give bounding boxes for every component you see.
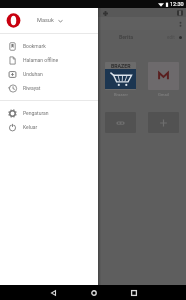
button[interactable]: New tab	[101, 9, 109, 17]
button[interactable]: Recent apps	[128, 287, 139, 298]
staticText: 12:30	[170, 1, 184, 7]
staticText: BRAZER	[111, 63, 131, 69]
button[interactable]	[148, 62, 179, 90]
button[interactable]: Keluar	[0, 120, 98, 134]
button[interactable]: Riwayat	[0, 81, 98, 95]
button[interactable]: Saved pages	[105, 112, 136, 133]
button[interactable]: Back	[48, 287, 59, 298]
staticText: Gmail	[158, 92, 169, 97]
staticText: Bookmark	[23, 43, 46, 49]
button[interactable]: Home	[88, 287, 99, 298]
button[interactable]: Add speed dial	[148, 112, 179, 133]
staticText: Halaman offline	[23, 57, 59, 63]
button[interactable]: Masuk	[0, 8, 98, 33]
button[interactable]: Pengaturan	[0, 106, 98, 120]
staticText: Berita	[119, 34, 133, 40]
button[interactable]: Unduhan	[0, 67, 98, 81]
staticText: Masuk	[37, 17, 54, 24]
button[interactable]: Halaman offline	[0, 53, 98, 67]
button[interactable]: Bookmark	[0, 39, 98, 53]
staticText: Keluar	[23, 124, 38, 130]
button[interactable]: BRAZER	[105, 62, 136, 90]
staticText: Unduhan	[23, 71, 43, 77]
staticText: Pengaturan	[23, 110, 49, 116]
staticText: Brazzer	[114, 92, 128, 97]
staticText: Riwayat	[23, 85, 41, 91]
staticText: edit	[167, 35, 175, 40]
button[interactable]: Tabs	[175, 8, 184, 17]
